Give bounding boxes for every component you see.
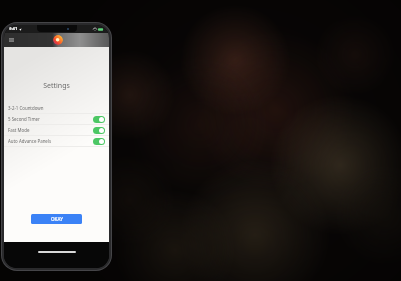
button[interactable]: 5 Second Timer xyxy=(4,114,109,124)
button[interactable]: Fast Mode xyxy=(4,125,109,135)
staticText: 9:41 xyxy=(9,26,18,32)
button[interactable]: Menu xyxy=(7,36,15,44)
staticText: Settings xyxy=(4,81,109,91)
staticText: 3-2-1 Countdown xyxy=(8,105,44,111)
staticText: Fast Mode xyxy=(8,127,30,133)
button[interactable]: App logo xyxy=(53,35,63,45)
button[interactable]: Auto Advance Panels xyxy=(4,136,109,146)
button[interactable]: OKAY xyxy=(31,214,82,224)
staticText: OKAY xyxy=(51,216,63,222)
button[interactable]: 3-2-1 Countdown xyxy=(4,103,109,113)
staticText: 5 Second Timer xyxy=(8,116,40,122)
staticText: Auto Advance Panels xyxy=(8,138,52,144)
